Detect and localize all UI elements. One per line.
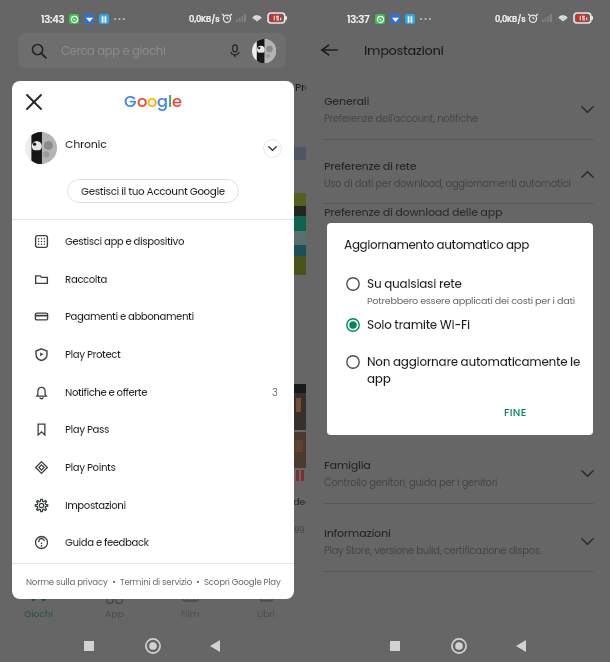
staticText: Pagamenti e abbonamenti bbox=[65, 309, 194, 323]
button[interactable]: Solo tramite Wi-Fi bbox=[327, 311, 593, 338]
button[interactable]: Pagamenti e abbonamenti bbox=[12, 297, 294, 335]
staticText: 0,0KB/s bbox=[495, 13, 526, 24]
staticText: g bbox=[157, 90, 168, 113]
button[interactable]: Play Points bbox=[12, 448, 294, 486]
staticText: Preferiti per te bbox=[295, 80, 306, 95]
staticText: o bbox=[147, 90, 157, 113]
button[interactable]: Indietro bbox=[198, 629, 232, 662]
staticText: Play Store, versione build, certificazio… bbox=[324, 544, 542, 558]
button[interactable]: Libri bbox=[232, 589, 300, 625]
staticText: Giochi bbox=[24, 607, 53, 620]
staticText: Aggiornamento automatico app bbox=[344, 236, 529, 253]
staticText: 0,0KB/s bbox=[189, 13, 220, 24]
staticText: e bbox=[172, 90, 182, 113]
staticText: Preferenze di download delle app bbox=[324, 204, 503, 220]
button[interactable]: Guida e feedback bbox=[12, 523, 294, 561]
button[interactable]: Giochi bbox=[4, 589, 72, 625]
button[interactable]: Su qualsiasi rete bbox=[327, 270, 593, 312]
button[interactable]: Play Protect bbox=[12, 335, 294, 373]
button[interactable]: Informazioni bbox=[306, 511, 610, 571]
staticText: 3 bbox=[272, 385, 278, 399]
button[interactable]: Indietro bbox=[311, 32, 347, 68]
staticText: Gestisci app e dispositivo bbox=[65, 234, 184, 248]
staticText: G bbox=[124, 90, 137, 113]
button[interactable]: Famiglia bbox=[306, 443, 610, 503]
staticText: Film bbox=[181, 607, 200, 620]
button[interactable]: Non aggiornare automaticamente le app bbox=[327, 348, 593, 392]
button[interactable]: Scopri Google Play bbox=[204, 576, 281, 588]
button[interactable]: App bbox=[80, 589, 148, 625]
staticText: Su qualsiasi rete bbox=[367, 275, 462, 292]
staticText: Generali bbox=[324, 93, 370, 109]
staticText: Potrebbero essere applicati dei costi pe… bbox=[367, 294, 575, 307]
staticText: Chronic bbox=[65, 136, 107, 151]
staticText: Cerca app e giochi bbox=[61, 43, 166, 59]
button[interactable]: Norme sulla privacy bbox=[26, 576, 108, 588]
staticText: Non aggiornare automaticamente le app bbox=[367, 353, 588, 387]
staticText: Play Pass bbox=[65, 422, 110, 436]
staticText: Preferenze dell'account, notifiche bbox=[324, 112, 478, 126]
staticText: Guida e feedback bbox=[65, 535, 149, 549]
staticText: Raccolta bbox=[65, 272, 107, 286]
staticText: Libri bbox=[257, 607, 275, 620]
staticText: 99 bbox=[294, 524, 305, 536]
button[interactable]: Recenti bbox=[378, 629, 412, 662]
staticText: Solo tramite Wi-Fi bbox=[367, 316, 470, 333]
button[interactable]: Termini di servizio bbox=[120, 576, 192, 588]
staticText: Controllo genitori, guida per i genitori bbox=[324, 476, 498, 490]
button[interactable]: Notifiche e offerte bbox=[12, 373, 294, 411]
staticText: App bbox=[105, 607, 124, 620]
staticText: Play Points bbox=[65, 460, 116, 474]
staticText: ideo bbox=[291, 495, 306, 508]
button[interactable]: Film bbox=[156, 589, 224, 625]
staticText: Preferenze di rete bbox=[324, 158, 417, 174]
staticText: • bbox=[192, 576, 204, 588]
button[interactable]: Recenti bbox=[72, 629, 106, 662]
button[interactable]: Cerca app e giochi bbox=[18, 33, 286, 68]
button[interactable]: Raccolta bbox=[12, 260, 294, 298]
staticText: o bbox=[137, 90, 147, 113]
staticText: Uso di dati per download, aggiornamenti … bbox=[324, 177, 571, 191]
button[interactable]: Chiudi bbox=[16, 84, 52, 120]
staticText: Impostazioni bbox=[65, 498, 126, 512]
button[interactable]: Gestisci app e dispositivo bbox=[12, 222, 294, 260]
staticText: Gestisci il tuo Account Google bbox=[81, 184, 225, 199]
staticText: 13:37 bbox=[347, 12, 370, 26]
button[interactable]: Home bbox=[442, 629, 476, 662]
button[interactable]: Gestisci il tuo Account Google bbox=[67, 179, 239, 203]
staticText: Informazioni bbox=[324, 525, 391, 541]
staticText: Notifiche e offerte bbox=[65, 385, 147, 399]
staticText: 13:43 bbox=[41, 12, 65, 26]
staticText: Play Protect bbox=[65, 347, 121, 361]
button[interactable]: Home bbox=[136, 629, 170, 662]
button[interactable]: Generali bbox=[306, 80, 610, 139]
staticText: l bbox=[168, 90, 172, 113]
staticText: Impostazioni bbox=[364, 41, 444, 59]
staticText: Famiglia bbox=[324, 457, 371, 473]
button[interactable]: Play Pass bbox=[12, 410, 294, 448]
button[interactable]: Preferenze di rete bbox=[306, 145, 610, 203]
button[interactable]: FINE bbox=[494, 400, 537, 425]
button[interactable]: Espandi account bbox=[263, 139, 282, 158]
button[interactable]: Indietro bbox=[504, 629, 538, 662]
staticText: • bbox=[108, 576, 120, 588]
button[interactable]: Impostazioni bbox=[12, 486, 294, 524]
staticText: FINE bbox=[504, 405, 527, 420]
